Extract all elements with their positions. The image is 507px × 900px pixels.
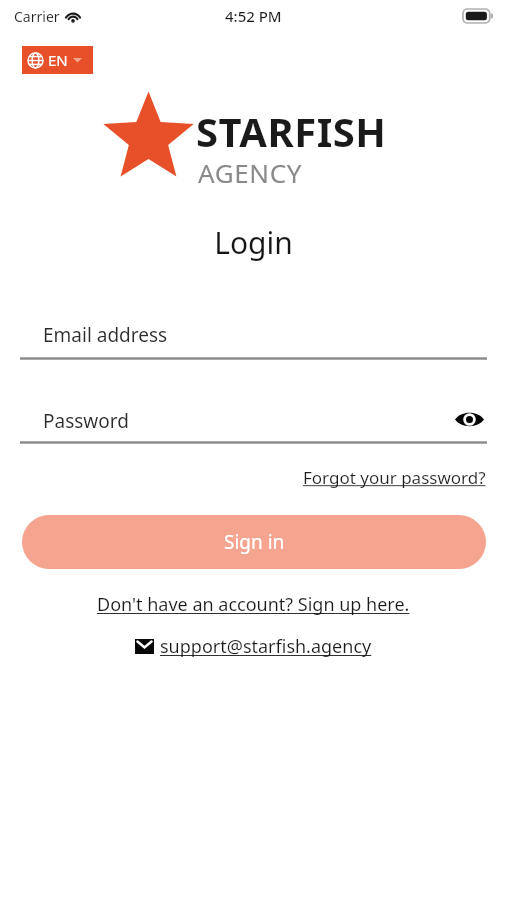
- button[interactable]: support@starfish.agency: [131, 632, 376, 661]
- button[interactable]: Password: [0, 398, 507, 438]
- button[interactable]: Don't have an account? Sign up here.: [93, 589, 414, 620]
- staticText: EN: [48, 50, 68, 70]
- staticText: AGENCY: [198, 155, 302, 190]
- staticText: Carrier: [14, 7, 60, 26]
- staticText: Sign in: [224, 529, 285, 555]
- button[interactable]: Sign in: [22, 515, 486, 569]
- button[interactable]: Forgot your password?: [301, 463, 488, 492]
- staticText: Login: [214, 222, 293, 263]
- button[interactable]: Email address: [0, 312, 507, 360]
- staticText: support@starfish.agency: [160, 634, 372, 659]
- staticText: 4:52 PM: [225, 6, 282, 26]
- staticText: STARFISH: [196, 104, 387, 158]
- staticText: Forgot your password?: [303, 466, 486, 489]
- staticText: Email address: [43, 322, 168, 348]
- button[interactable]: Show password: [451, 404, 487, 434]
- button[interactable]: Select language English: [22, 46, 93, 74]
- staticText: Don't have an account? Sign up here.: [97, 592, 410, 617]
- staticText: Password: [43, 408, 129, 434]
